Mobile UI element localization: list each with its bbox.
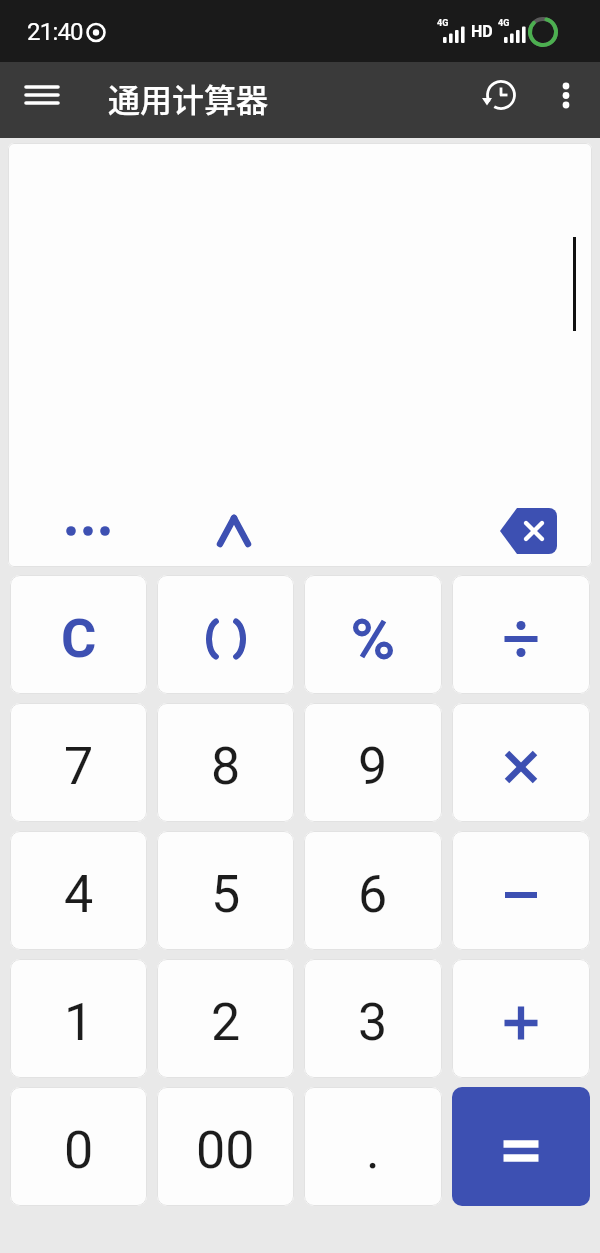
staticText: 7 [64, 736, 94, 797]
staticText: 3 [358, 992, 388, 1053]
staticText: 1 [64, 992, 94, 1053]
staticText: 00 [196, 1120, 255, 1181]
staticText: 5 [211, 864, 241, 925]
staticText: 6 [358, 864, 388, 925]
staticText: 0 [64, 1120, 94, 1181]
staticText: 4G [437, 18, 449, 29]
staticText: . [366, 1120, 380, 1181]
staticText: 4 [64, 864, 94, 925]
staticText: 9 [358, 736, 388, 797]
staticText: 8 [211, 736, 241, 797]
staticText: C [61, 607, 97, 670]
staticText: HD [471, 22, 493, 41]
staticText: 21:40 [27, 18, 83, 46]
staticText: 2 [211, 992, 241, 1053]
staticText: 通用计算器 [108, 75, 269, 121]
staticText: 4G [498, 18, 510, 29]
